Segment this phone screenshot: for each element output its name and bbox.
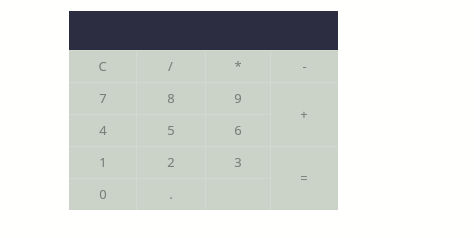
staticText: 1	[99, 153, 107, 171]
button[interactable]: 2	[136, 146, 205, 178]
staticText: C	[98, 57, 107, 75]
staticText: =	[300, 169, 308, 187]
button[interactable]: 7	[69, 82, 136, 114]
button[interactable]: *	[205, 50, 270, 82]
staticText: 6	[234, 121, 242, 139]
staticText: 2	[167, 153, 175, 171]
button[interactable]: C	[69, 50, 136, 82]
button[interactable]: +	[270, 82, 338, 146]
staticText: 8	[167, 89, 175, 107]
button[interactable]: 4	[69, 114, 136, 146]
button[interactable]: 0	[69, 178, 136, 210]
staticText: -	[302, 57, 307, 75]
staticText: 0	[99, 185, 107, 203]
button[interactable]: /	[136, 50, 205, 82]
button[interactable]: 1	[69, 146, 136, 178]
staticText: 7	[99, 89, 107, 107]
button[interactable]: 8	[136, 82, 205, 114]
staticText: 5	[167, 121, 175, 139]
staticText: .	[169, 185, 173, 203]
button[interactable]: 6	[205, 114, 270, 146]
staticText: 9	[234, 89, 242, 107]
button[interactable]: 3	[205, 146, 270, 178]
staticText: 3	[234, 153, 242, 171]
button[interactable]: -	[270, 50, 338, 82]
button[interactable]: 9	[205, 82, 270, 114]
button[interactable]: =	[270, 146, 338, 210]
staticText: +	[300, 105, 308, 123]
staticText: /	[168, 57, 173, 75]
staticText: *	[234, 57, 242, 75]
button[interactable]: 5	[136, 114, 205, 146]
staticText: 4	[99, 121, 107, 139]
